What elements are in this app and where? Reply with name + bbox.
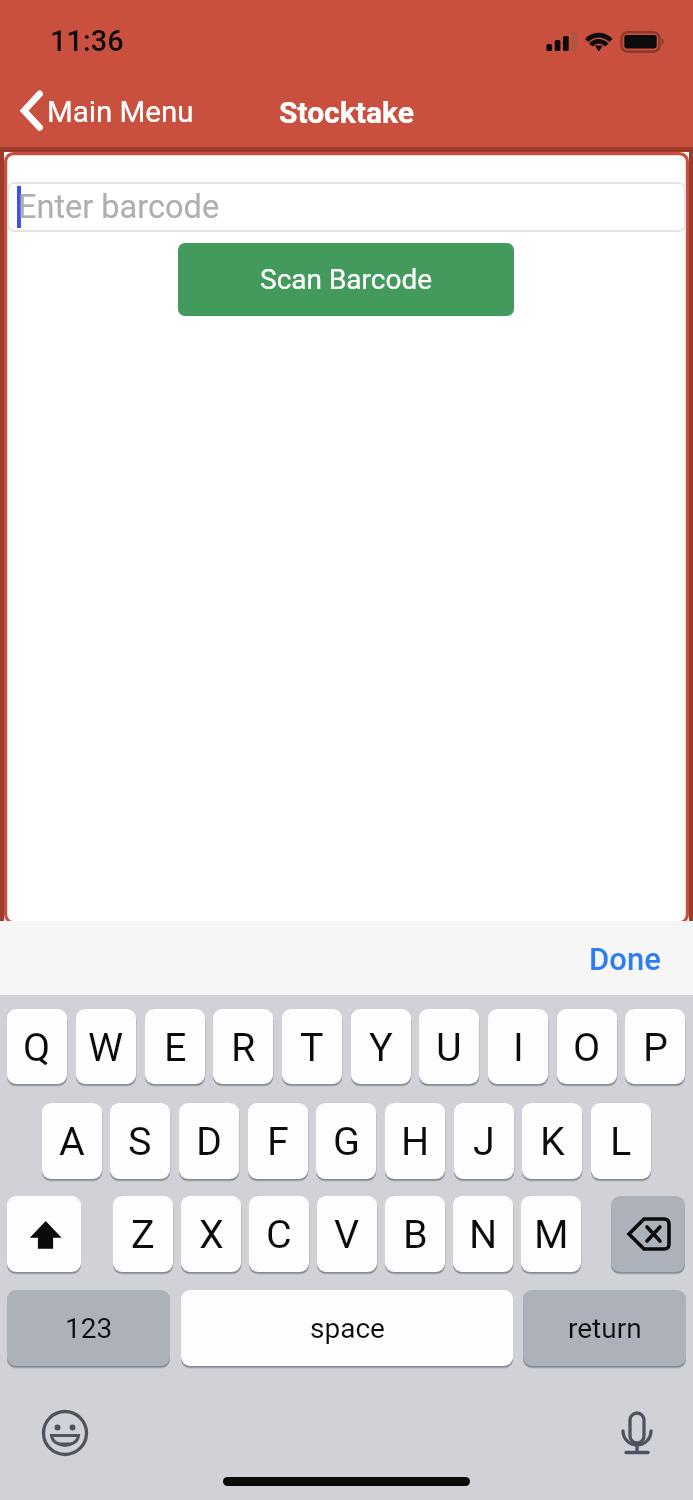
staticText: M: [534, 1211, 569, 1257]
button[interactable]: T: [282, 1009, 342, 1084]
staticText: Z: [131, 1211, 155, 1257]
staticText: A: [59, 1118, 85, 1164]
button[interactable]: Dictation: [613, 1408, 661, 1456]
button[interactable]: space: [181, 1290, 513, 1366]
staticText: L: [610, 1118, 632, 1164]
staticText: space: [310, 1312, 385, 1345]
staticText: H: [401, 1118, 430, 1164]
staticText: T: [300, 1024, 324, 1070]
staticText: D: [196, 1118, 222, 1164]
button[interactable]: Enter barcode: [7, 182, 686, 232]
button[interactable]: I: [488, 1009, 548, 1084]
button[interactable]: return: [523, 1290, 686, 1366]
button[interactable]: Q: [7, 1009, 67, 1084]
button[interactable]: L: [591, 1103, 651, 1179]
staticText: P: [643, 1024, 668, 1070]
button[interactable]: U: [419, 1009, 479, 1084]
staticText: I: [513, 1024, 524, 1070]
button[interactable]: Emoji: [41, 1409, 89, 1457]
staticText: 123: [65, 1312, 113, 1345]
staticText: O: [573, 1024, 601, 1070]
staticText: Main Menu: [47, 95, 194, 130]
staticText: B: [403, 1211, 428, 1257]
button[interactable]: Scan Barcode: [178, 243, 514, 316]
button[interactable]: M: [521, 1196, 581, 1272]
staticText: R: [231, 1024, 256, 1070]
button[interactable]: Done: [589, 941, 661, 977]
staticText: F: [267, 1118, 289, 1164]
staticText: Stocktake: [279, 95, 414, 130]
staticText: N: [469, 1211, 498, 1257]
button[interactable]: Main Menu: [14, 84, 196, 140]
button[interactable]: D: [179, 1103, 239, 1179]
staticText: X: [199, 1211, 224, 1257]
staticText: Q: [23, 1024, 51, 1070]
button[interactable]: Backspace: [611, 1196, 685, 1272]
staticText: Scan Barcode: [260, 263, 433, 296]
staticText: J: [473, 1118, 495, 1164]
staticText: C: [266, 1211, 292, 1257]
staticText: 11:36: [50, 24, 124, 58]
button[interactable]: 123: [7, 1290, 170, 1366]
button[interactable]: Y: [351, 1009, 411, 1084]
staticText: S: [128, 1118, 152, 1164]
staticText: Done: [589, 941, 661, 977]
button[interactable]: X: [181, 1196, 241, 1272]
staticText: return: [568, 1312, 642, 1345]
button[interactable]: H: [385, 1103, 445, 1179]
staticText: Enter barcode: [18, 188, 220, 226]
button[interactable]: J: [454, 1103, 514, 1179]
button[interactable]: W: [76, 1009, 136, 1084]
button[interactable]: C: [249, 1196, 309, 1272]
button[interactable]: K: [522, 1103, 582, 1179]
button[interactable]: F: [248, 1103, 308, 1179]
button[interactable]: Z: [113, 1196, 173, 1272]
staticText: V: [334, 1211, 360, 1257]
button[interactable]: B: [385, 1196, 445, 1272]
button[interactable]: R: [213, 1009, 273, 1084]
button[interactable]: V: [317, 1196, 377, 1272]
button[interactable]: N: [453, 1196, 513, 1272]
staticText: K: [540, 1118, 565, 1164]
button[interactable]: P: [625, 1009, 685, 1084]
button[interactable]: O: [557, 1009, 617, 1084]
button[interactable]: G: [316, 1103, 376, 1179]
staticText: W: [88, 1024, 124, 1070]
button[interactable]: A: [42, 1103, 102, 1179]
staticText: Y: [369, 1024, 393, 1070]
staticText: U: [436, 1024, 462, 1070]
button[interactable]: S: [110, 1103, 170, 1179]
staticText: G: [333, 1118, 360, 1164]
staticText: E: [164, 1024, 187, 1070]
button[interactable]: Shift: [7, 1196, 81, 1272]
button[interactable]: E: [145, 1009, 205, 1084]
